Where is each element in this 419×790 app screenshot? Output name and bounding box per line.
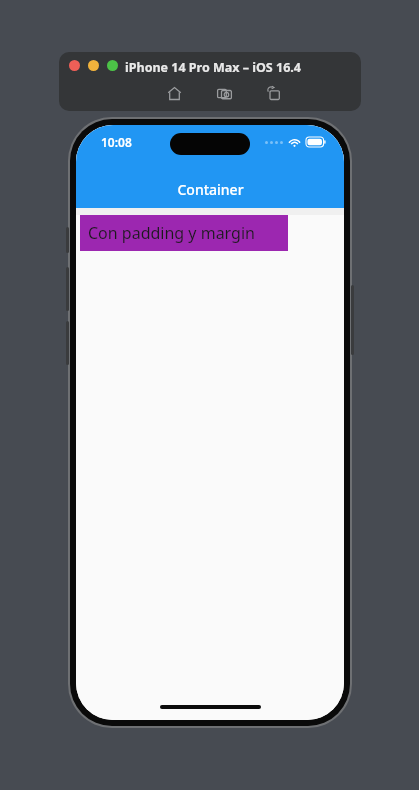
staticText: 10:08 xyxy=(101,134,132,150)
button[interactable]: Con padding y margin xyxy=(80,215,288,251)
button[interactable]: Screenshot xyxy=(213,82,235,104)
staticText: iPhone 14 Pro Max – iOS 16.4 xyxy=(125,59,301,76)
button[interactable]: Maximize xyxy=(107,60,118,71)
button[interactable]: Rotate xyxy=(263,82,285,104)
staticText: Con padding y margin xyxy=(88,222,255,244)
staticText: Container xyxy=(177,180,244,199)
button[interactable]: Minimize xyxy=(88,60,99,71)
button[interactable]: Close xyxy=(69,60,80,71)
button[interactable]: Home xyxy=(163,82,185,104)
